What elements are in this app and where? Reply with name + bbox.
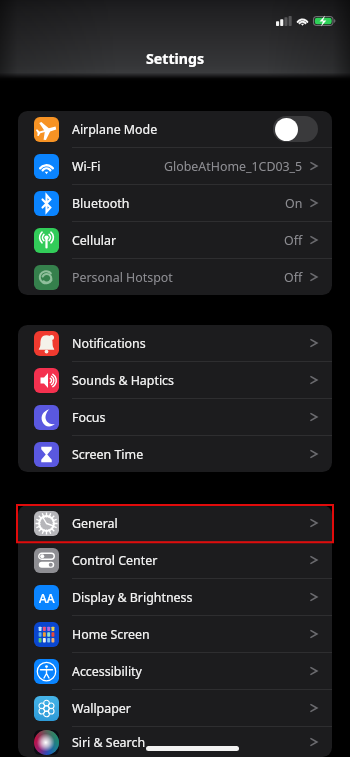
button[interactable]: Screen Time bbox=[18, 436, 332, 472]
button[interactable]: Personal Hotspot bbox=[18, 259, 332, 295]
staticText: Settings bbox=[146, 49, 205, 68]
staticText: Wi-Fi bbox=[72, 158, 101, 175]
button[interactable]: Notifications bbox=[18, 325, 332, 361]
staticText: Home Screen bbox=[72, 626, 150, 643]
staticText: Cellular bbox=[72, 232, 117, 249]
staticText: Airplane Mode bbox=[72, 121, 158, 138]
button[interactable]: Bluetooth bbox=[18, 185, 332, 221]
button[interactable]: Accessibility bbox=[18, 653, 332, 689]
button[interactable]: Focus bbox=[18, 399, 332, 435]
staticText: Control Center bbox=[72, 552, 158, 569]
staticText: Screen Time bbox=[72, 446, 144, 463]
button[interactable]: Siri & Search bbox=[18, 727, 332, 757]
staticText: AA bbox=[39, 590, 55, 606]
staticText: Off bbox=[284, 232, 303, 249]
staticText: Notifications bbox=[72, 335, 146, 352]
staticText: Wallpaper bbox=[72, 700, 131, 717]
staticText: Bluetooth bbox=[72, 195, 130, 212]
staticText: On bbox=[285, 195, 303, 212]
staticText: Display & Brightness bbox=[72, 589, 193, 606]
staticText: Siri & Search bbox=[72, 734, 146, 751]
button[interactable]: Sounds & Haptics bbox=[18, 362, 332, 398]
staticText: General bbox=[72, 515, 118, 532]
button[interactable]: Airplane Mode toggle bbox=[273, 116, 318, 142]
button[interactable]: Cellular bbox=[18, 222, 332, 258]
staticText: GlobeAtHome_1CD03_5 bbox=[164, 158, 303, 175]
button[interactable]: Wi-Fi bbox=[18, 148, 332, 184]
staticText: Sounds & Haptics bbox=[72, 372, 174, 389]
staticText: Off bbox=[284, 269, 303, 286]
button[interactable]: General bbox=[18, 505, 332, 541]
button[interactable]: Home Screen bbox=[18, 616, 332, 652]
staticText: Accessibility bbox=[72, 663, 142, 680]
button[interactable]: Wallpaper bbox=[18, 690, 332, 726]
staticText: Personal Hotspot bbox=[72, 269, 173, 286]
button[interactable]: Airplane Mode bbox=[18, 111, 332, 147]
staticText: Focus bbox=[72, 409, 106, 426]
button[interactable]: AA bbox=[18, 579, 332, 615]
button[interactable]: Control Center bbox=[18, 542, 332, 578]
